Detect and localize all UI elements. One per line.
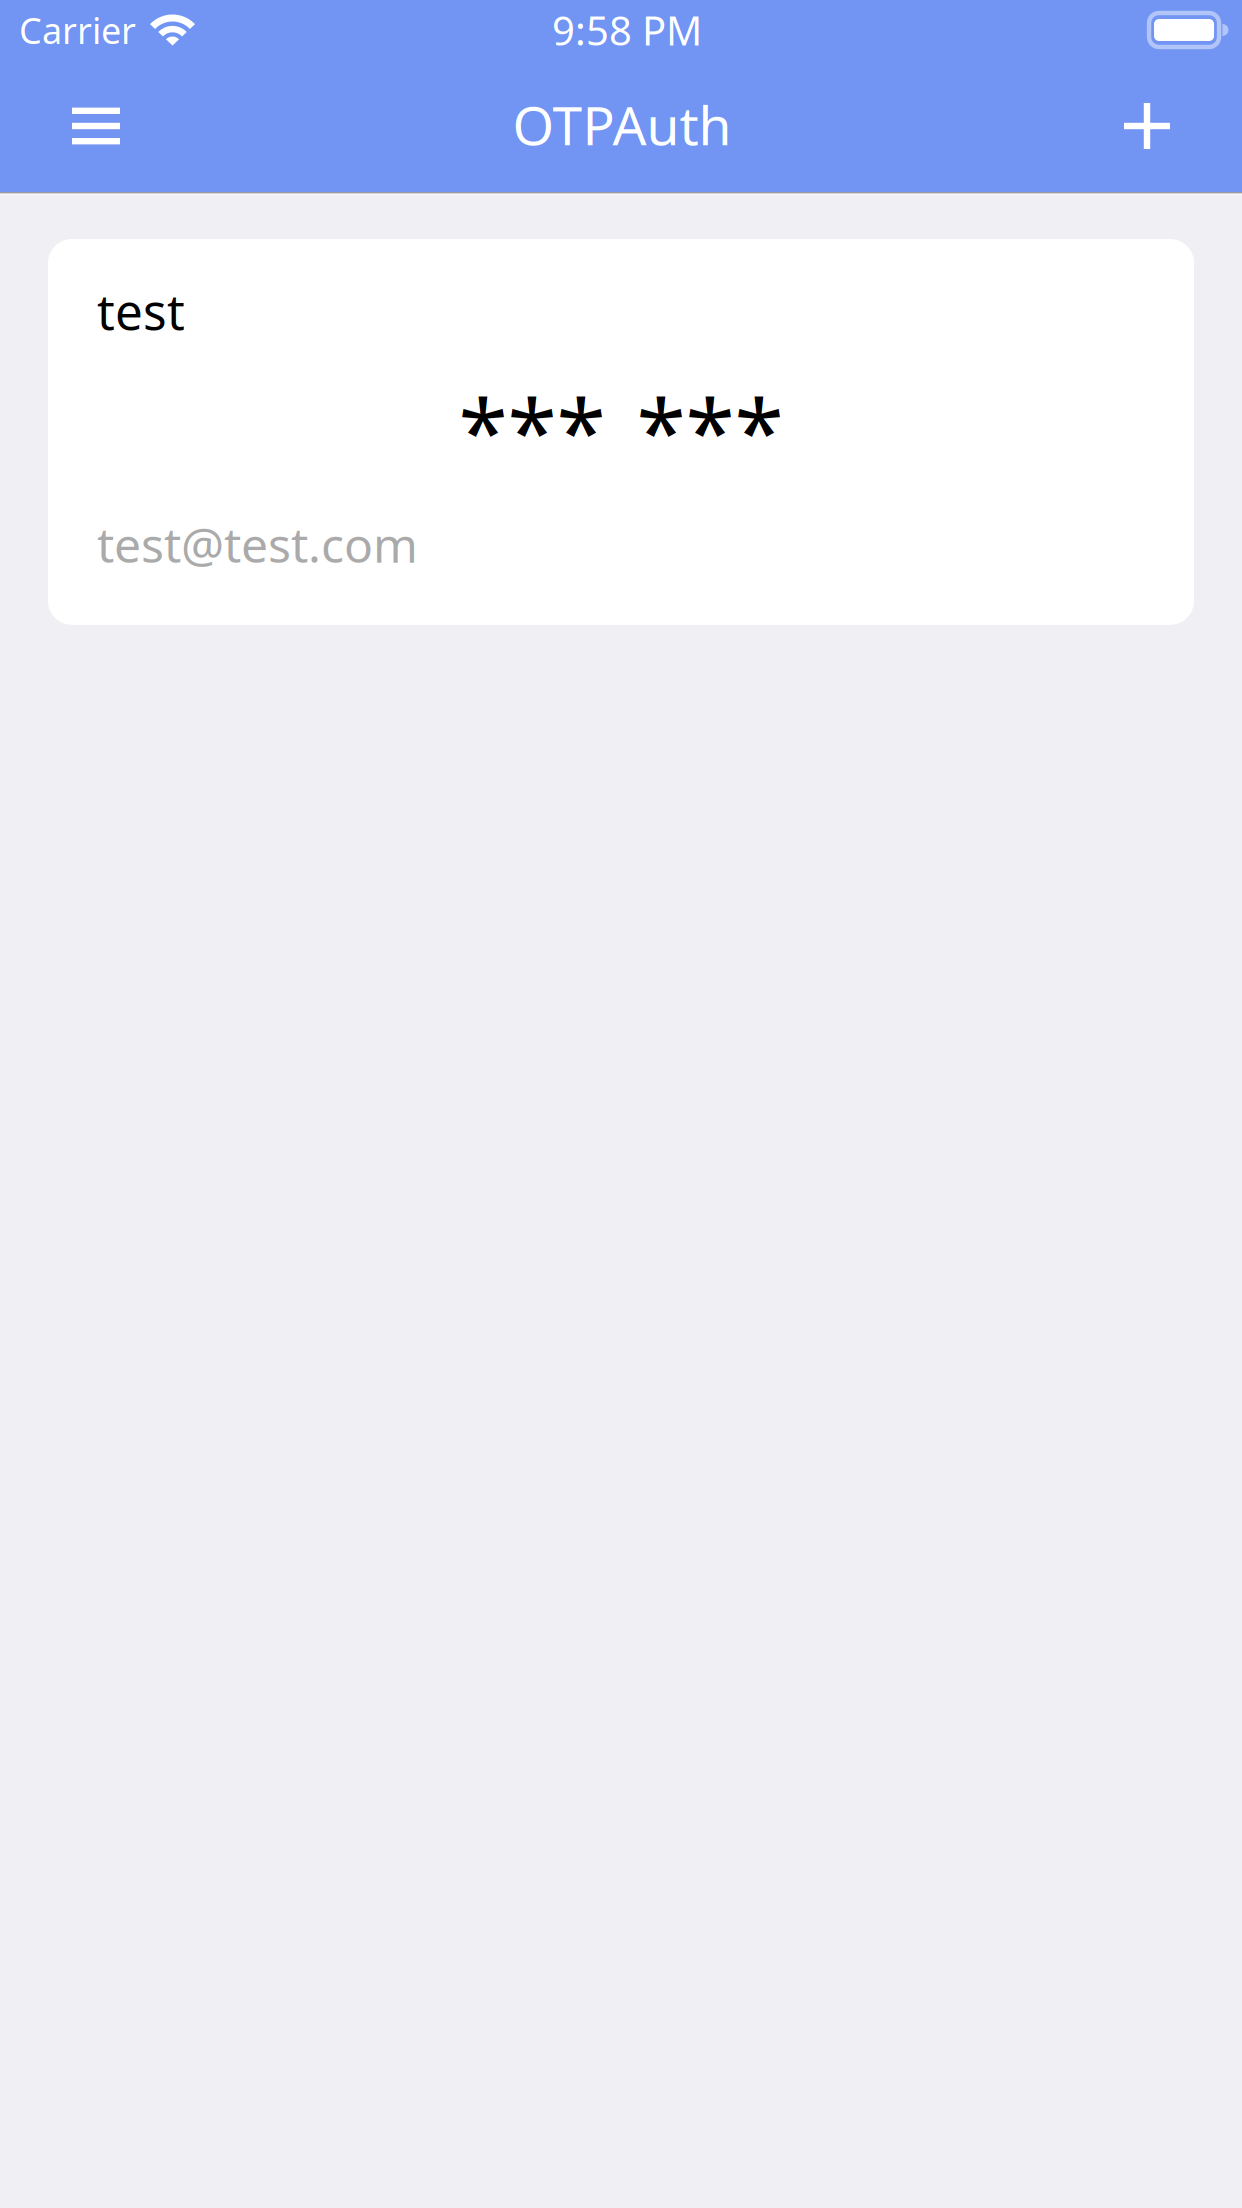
staticText: test	[97, 278, 185, 343]
staticText: test@test.com	[97, 512, 418, 576]
button[interactable]: Menu	[48, 60, 144, 192]
staticText: 9:58 PM	[552, 3, 702, 56]
button[interactable]: Add	[1099, 60, 1195, 192]
staticText: ***	[636, 370, 783, 489]
button[interactable]: test	[48, 239, 1194, 625]
staticText: Carrier	[19, 6, 136, 54]
staticText: OTPAuth	[512, 89, 731, 160]
staticText: ***	[458, 370, 605, 489]
